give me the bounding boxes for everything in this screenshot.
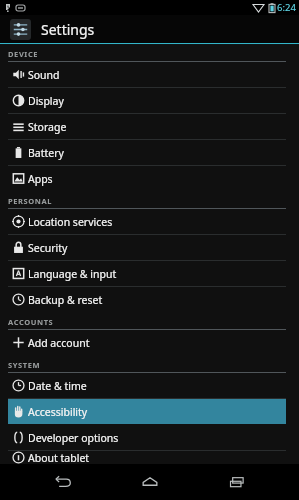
button[interactable]: Backup & reset	[8, 287, 286, 312]
button[interactable]: Battery	[8, 140, 286, 165]
button[interactable]: Developer options	[8, 425, 286, 450]
button[interactable]: Add account	[8, 330, 286, 355]
button[interactable]: Location services	[8, 209, 286, 234]
staticText: Date & time	[28, 379, 87, 393]
staticText: About tablet	[28, 451, 90, 464]
button[interactable]: Date & time	[8, 373, 286, 398]
staticText: Location services	[28, 215, 113, 229]
staticText: SYSTEM	[8, 360, 41, 370]
staticText: Accessibility	[28, 405, 88, 419]
button[interactable]: Settings	[0, 15, 299, 43]
button[interactable]: Accessibility	[8, 399, 286, 424]
button[interactable]: Storage	[8, 114, 286, 139]
staticText: Storage	[28, 120, 67, 134]
button[interactable]: Recent apps	[211, 464, 263, 500]
staticText: PERSONAL	[8, 196, 53, 206]
staticText: DEVICE	[8, 49, 39, 59]
staticText: Language & input	[28, 267, 117, 281]
staticText: Sound	[28, 68, 60, 82]
button[interactable]: Language & input	[8, 261, 286, 286]
button[interactable]: About tablet	[8, 451, 286, 464]
staticText: Apps	[28, 172, 53, 186]
button[interactable]: Apps	[8, 166, 286, 191]
button[interactable]: Back	[36, 464, 88, 500]
staticText: Backup & reset	[28, 293, 103, 307]
staticText: Settings	[41, 20, 95, 39]
staticText: 6:24	[277, 1, 296, 14]
staticText: Display	[28, 94, 64, 108]
staticText: Add account	[28, 336, 90, 350]
staticText: Security	[28, 241, 68, 255]
button[interactable]: Home	[124, 464, 176, 500]
staticText: ACCOUNTS	[8, 317, 54, 327]
staticText: Battery	[28, 146, 64, 160]
staticText: Developer options	[28, 431, 119, 445]
button[interactable]: Sound	[8, 62, 286, 87]
button[interactable]: Display	[8, 88, 286, 113]
button[interactable]: Security	[8, 235, 286, 260]
